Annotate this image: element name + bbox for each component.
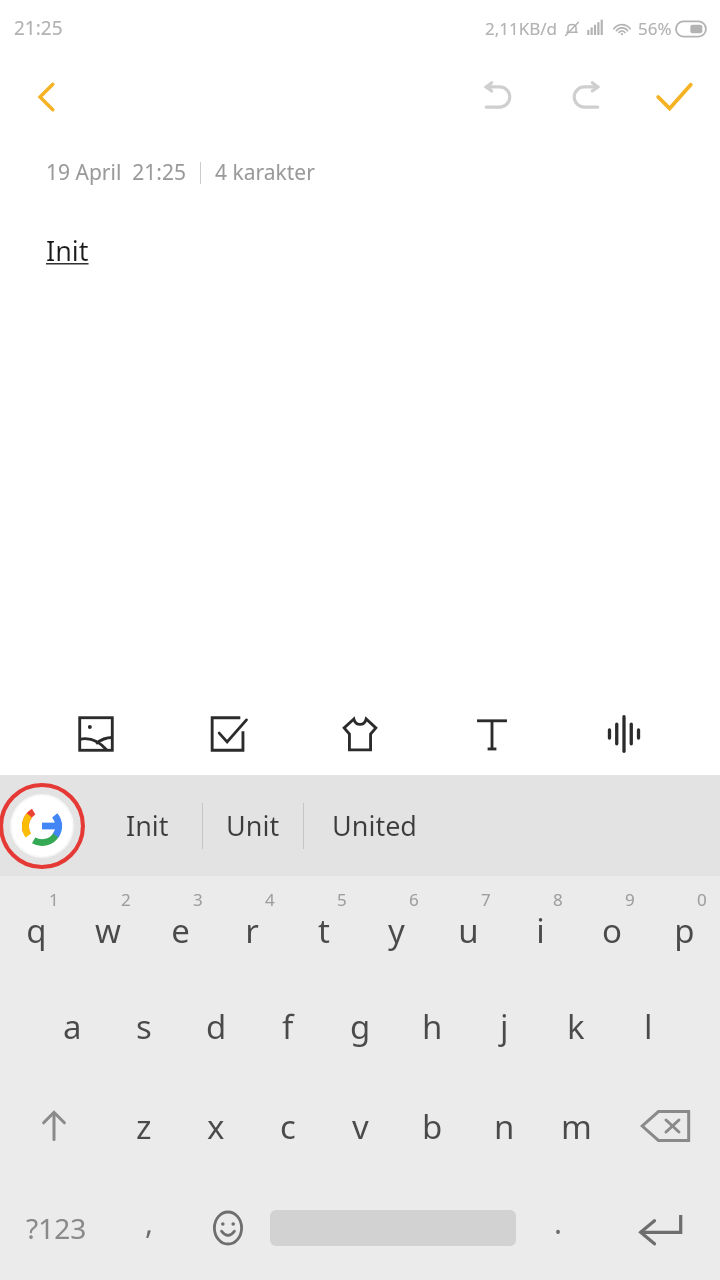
button[interactable]: t [288, 876, 360, 976]
button[interactable]: Insert image [60, 698, 132, 770]
staticText: z [136, 1104, 152, 1149]
button[interactable]: ?123 [0, 1176, 112, 1280]
button[interactable]: o [576, 876, 648, 976]
button[interactable]: a [36, 976, 108, 1076]
staticText: 4 [265, 888, 275, 911]
button[interactable]: b [396, 1076, 468, 1176]
staticText: w [95, 908, 121, 953]
button[interactable]: d [180, 976, 252, 1076]
staticText: 2,11KB/d [485, 17, 558, 40]
button[interactable]: Undo [466, 65, 530, 129]
staticText: r [245, 908, 259, 953]
staticText: q [26, 908, 47, 953]
staticText: 2 [121, 888, 131, 911]
button[interactable]: m [540, 1076, 612, 1176]
staticText: l [644, 1004, 653, 1049]
staticText: m [561, 1104, 592, 1149]
staticText: h [422, 1004, 443, 1049]
staticText: c [280, 1104, 296, 1149]
staticText: 3 [193, 888, 203, 911]
button[interactable]: Text format [456, 698, 528, 770]
button[interactable]: k [540, 976, 612, 1076]
staticText: 19 April 21:25 [46, 158, 186, 187]
button[interactable]: Back [20, 69, 76, 125]
staticText: United [332, 807, 417, 844]
staticText: v [352, 1104, 369, 1149]
button[interactable]: Emoji [186, 1176, 270, 1280]
button[interactable]: c [252, 1076, 324, 1176]
button[interactable]: g [324, 976, 396, 1076]
staticText: d [206, 1004, 227, 1049]
staticText: 7 [481, 888, 491, 911]
staticText: 21:25 [14, 15, 63, 41]
staticText: p [674, 908, 695, 953]
staticText: b [422, 1104, 443, 1149]
button[interactable]: s [108, 976, 180, 1076]
button[interactable]: u [432, 876, 504, 976]
button[interactable]: . [516, 1176, 600, 1280]
button[interactable]: f [252, 976, 324, 1076]
button[interactable]: Init [92, 775, 202, 876]
button[interactable]: q [0, 876, 72, 976]
button[interactable]: Enter [600, 1176, 720, 1280]
button[interactable]: Shift [0, 1076, 108, 1176]
button[interactable]: Done [642, 65, 706, 129]
button[interactable]: Backspace [612, 1076, 720, 1176]
button[interactable]: Unit [203, 775, 303, 876]
button[interactable]: Space [270, 1176, 516, 1280]
button[interactable]: j [468, 976, 540, 1076]
button[interactable]: Voice [588, 698, 660, 770]
staticText: Init [46, 232, 89, 269]
staticText: t [318, 908, 330, 953]
staticText: i [536, 908, 545, 953]
staticText: f [282, 1004, 294, 1049]
staticText: Unit [226, 807, 280, 844]
staticText: j [500, 1004, 509, 1049]
staticText: Init [126, 807, 169, 844]
staticText: ?123 [26, 1209, 87, 1247]
staticText: a [63, 1004, 82, 1049]
button[interactable]: w [72, 876, 144, 976]
staticText: k [567, 1004, 585, 1049]
button[interactable]: x [180, 1076, 252, 1176]
staticText: , [145, 1202, 154, 1243]
staticText: 6 [409, 888, 419, 911]
staticText: 8 [553, 888, 563, 911]
staticText: 56% [638, 17, 672, 40]
button[interactable]: v [324, 1076, 396, 1176]
staticText: g [350, 1004, 371, 1049]
button[interactable]: Checklist [192, 698, 264, 770]
button[interactable]: r [216, 876, 288, 976]
staticText: y [388, 908, 405, 953]
button[interactable]: y [360, 876, 432, 976]
button[interactable]: z [108, 1076, 180, 1176]
staticText: x [207, 1104, 225, 1149]
button[interactable]: Google [0, 778, 90, 874]
button[interactable]: , [112, 1176, 186, 1280]
staticText: s [136, 1004, 152, 1049]
button[interactable]: i [504, 876, 576, 976]
button[interactable]: Style [324, 698, 396, 770]
button[interactable]: e [144, 876, 216, 976]
staticText: 9 [625, 888, 635, 911]
staticText: u [458, 908, 479, 953]
staticText: 0 [697, 888, 707, 911]
staticText: 1 [49, 888, 59, 911]
button[interactable]: n [468, 1076, 540, 1176]
staticText: . [554, 1202, 563, 1243]
button[interactable]: p [648, 876, 720, 976]
button[interactable]: Redo [554, 65, 618, 129]
staticText: e [171, 908, 190, 953]
button[interactable]: h [396, 976, 468, 1076]
button[interactable]: United [304, 775, 444, 876]
staticText: 4 karakter [215, 158, 315, 187]
staticText: o [602, 908, 622, 953]
staticText: n [494, 1104, 515, 1149]
button[interactable]: l [612, 976, 684, 1076]
staticText: 5 [337, 888, 347, 911]
